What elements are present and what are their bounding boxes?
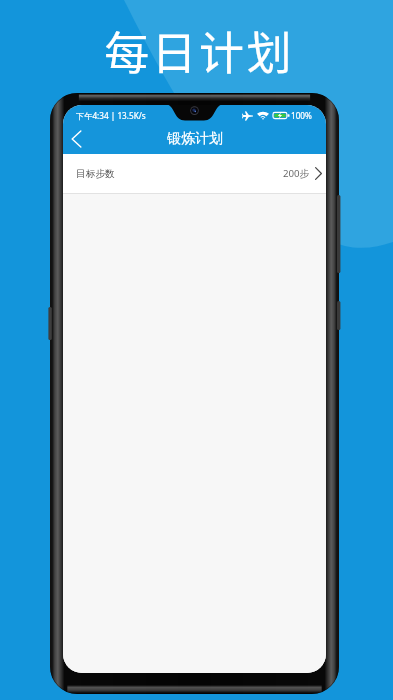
button[interactable]: 目标步数 — [63, 154, 326, 193]
button[interactable]: Back — [63, 124, 91, 154]
staticText: 目标步数 — [76, 168, 115, 180]
staticText: 200步 — [283, 167, 310, 180]
staticText: 每日计划 — [104, 18, 294, 83]
staticText: 下午4:34 | 13.5K/s — [76, 110, 146, 121]
staticText: 100% — [291, 110, 312, 121]
staticText: 锻炼计划 — [167, 130, 223, 148]
